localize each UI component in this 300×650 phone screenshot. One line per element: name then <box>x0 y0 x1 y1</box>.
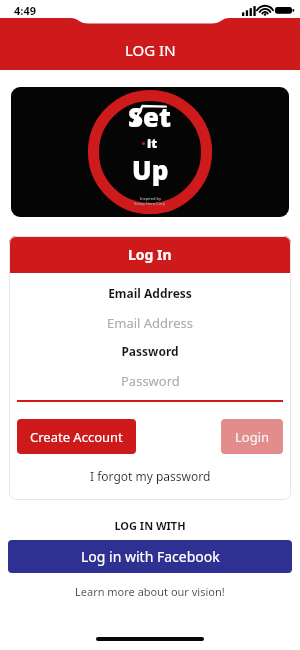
staticText: Up <box>132 152 169 187</box>
staticText: Log In <box>128 245 172 264</box>
staticText: Password <box>9 343 291 359</box>
button[interactable]: Email Address <box>9 313 291 333</box>
staticText: Setup Hero Corp <box>134 201 166 206</box>
button[interactable]: Create Account <box>17 419 136 454</box>
button[interactable]: Log in with Facebook <box>8 540 292 573</box>
button[interactable]: Login <box>221 419 283 454</box>
button[interactable]: I forgot my password <box>9 468 291 484</box>
staticText: Log in with Facebook <box>81 547 220 566</box>
staticText: Email Address <box>107 314 193 332</box>
staticText: Inspired by <box>140 196 161 201</box>
staticText: Learn more about our vision! <box>75 584 225 599</box>
button[interactable]: Password <box>9 371 291 391</box>
staticText: 4:49 <box>14 3 36 18</box>
staticText: Password <box>121 372 180 390</box>
staticText: LOG IN <box>125 40 176 60</box>
button[interactable]: Learn more about our vision! <box>0 584 300 599</box>
staticText: Login <box>235 428 270 446</box>
staticText: it <box>147 134 158 152</box>
staticText: LOG IN WITH <box>0 518 300 533</box>
staticText: Set <box>128 99 172 134</box>
staticText: I forgot my password <box>90 468 211 484</box>
staticText: Email Address <box>9 285 291 301</box>
staticText: Create Account <box>30 428 123 446</box>
